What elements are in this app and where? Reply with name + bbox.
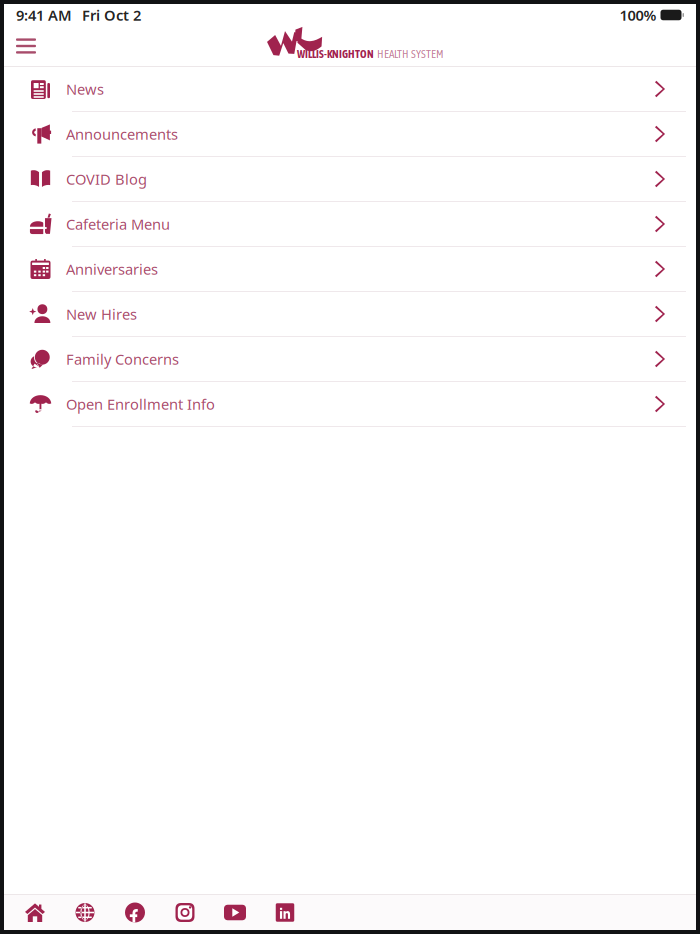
staticText: New Hires	[66, 304, 137, 324]
button[interactable]: Facebook	[110, 895, 160, 930]
button[interactable]: New Hires	[4, 292, 696, 337]
button[interactable]: Menu	[4, 26, 48, 66]
button[interactable]: Announcements	[4, 112, 696, 157]
button[interactable]: News	[4, 67, 696, 112]
staticText: News	[66, 79, 104, 99]
staticText: 100%	[619, 5, 656, 25]
staticText: COVID Blog	[66, 169, 147, 189]
button[interactable]: COVID Blog	[4, 157, 696, 202]
button[interactable]: Anniversaries	[4, 247, 696, 292]
staticText: Cafeteria Menu	[66, 214, 170, 234]
staticText: 9:41 AM	[16, 5, 72, 25]
button[interactable]: Open Enrollment Info	[4, 382, 696, 427]
button[interactable]: Cafeteria Menu	[4, 202, 696, 247]
staticText: Family Concerns	[66, 349, 179, 369]
staticText: HEALTH SYSTEM	[377, 48, 444, 60]
button[interactable]: Home	[10, 895, 60, 930]
staticText: WILLIS-KNIGHTON	[297, 48, 374, 60]
button[interactable]: Family Concerns	[4, 337, 696, 382]
button[interactable]: Instagram	[160, 895, 210, 930]
button[interactable]: LinkedIn	[260, 895, 310, 930]
button[interactable]: YouTube	[210, 895, 260, 930]
staticText: Announcements	[66, 124, 178, 144]
staticText: Fri Oct 2	[82, 5, 141, 25]
staticText: Anniversaries	[66, 259, 158, 279]
button[interactable]: Website	[60, 895, 110, 930]
staticText: Open Enrollment Info	[66, 394, 215, 414]
